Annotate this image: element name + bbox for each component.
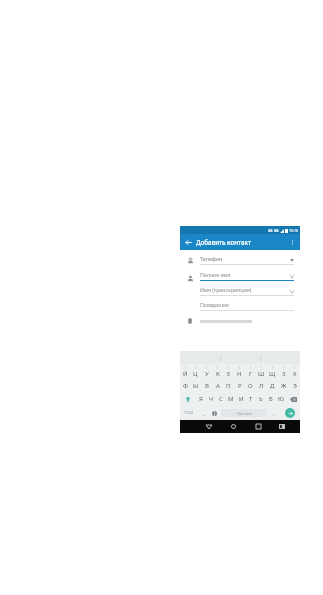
staticText: Ц — [193, 370, 198, 378]
staticText: ?123 — [184, 410, 194, 416]
button[interactable]: 1 — [234, 364, 245, 379]
staticText: Телефон — [200, 255, 290, 262]
button[interactable]: В — [201, 379, 212, 392]
staticText: Т — [249, 395, 253, 403]
staticText: 1 — [228, 366, 230, 370]
staticText: И — [239, 395, 244, 403]
button[interactable]: 1 — [245, 364, 256, 379]
button[interactable]: Hide keyboard — [271, 420, 293, 433]
staticText: Я — [199, 395, 203, 403]
staticText: В — [205, 382, 209, 390]
staticText: А — [216, 382, 220, 390]
staticText: Г — [249, 370, 253, 378]
button[interactable]: Псевдоним — [200, 301, 294, 311]
staticText: . — [273, 410, 275, 417]
staticText: Э — [293, 382, 297, 390]
button[interactable]: Б — [266, 392, 276, 406]
staticText: 1 — [206, 366, 208, 370]
button[interactable]: 1 — [180, 364, 190, 379]
staticText: У — [205, 370, 209, 378]
button[interactable]: А — [212, 379, 223, 392]
staticText: 3G — [268, 228, 273, 233]
button[interactable]: П — [223, 379, 234, 392]
staticText: Полное имя — [200, 271, 290, 278]
button[interactable]: 1 — [190, 364, 201, 379]
staticText: М — [228, 395, 234, 403]
staticText: , — [203, 410, 205, 417]
button[interactable]: . — [268, 406, 279, 420]
staticText: Ф — [183, 382, 188, 390]
staticText: Ч — [209, 395, 214, 403]
button[interactable]: Имя (транскрипция) — [200, 286, 294, 296]
staticText: К — [216, 370, 220, 378]
staticText: Д — [270, 382, 275, 390]
button[interactable]: 1 — [212, 364, 223, 379]
staticText: Ж — [281, 382, 287, 390]
staticText: 1 — [195, 366, 197, 370]
staticText: Ю — [278, 395, 284, 403]
button[interactable]: Ы — [190, 379, 201, 392]
button[interactable]: Ю — [276, 392, 286, 406]
button[interactable]: Back — [180, 234, 196, 250]
button[interactable]: Back — [196, 420, 221, 433]
staticText: Ь — [259, 395, 263, 403]
staticText: Л — [259, 382, 264, 390]
button[interactable]: ?123 — [180, 406, 198, 420]
staticText: 19:16 — [289, 228, 298, 233]
button[interactable]: , — [198, 406, 209, 420]
staticText: Ш — [258, 370, 265, 378]
button[interactable]: Switch language — [209, 406, 220, 420]
staticText: Ы — [193, 382, 199, 390]
button[interactable]: О — [245, 379, 256, 392]
button[interactable]: С — [216, 392, 226, 406]
button[interactable]: Shift — [180, 392, 195, 406]
staticText: 1 — [283, 366, 285, 370]
staticText: Щ — [269, 370, 276, 378]
button[interactable]: М — [226, 392, 236, 406]
button[interactable]: Э — [289, 379, 300, 392]
button[interactable]: Enter — [279, 406, 300, 420]
button[interactable]: Ь — [256, 392, 266, 406]
staticText: З — [282, 370, 286, 378]
staticText: 1 — [294, 366, 296, 370]
staticText: 1 — [261, 366, 263, 370]
button[interactable]: Полное имя — [200, 271, 294, 281]
button[interactable]: Д — [267, 379, 278, 392]
staticText: Х — [293, 370, 297, 378]
button[interactable]: Recent apps — [246, 420, 271, 433]
button[interactable]: Т — [246, 392, 256, 406]
staticText: 1 — [185, 366, 187, 370]
button[interactable]: Телефон — [180, 252, 300, 268]
staticText: 4G — [274, 228, 279, 233]
button[interactable]: 1 — [278, 364, 289, 379]
button[interactable]: Я — [195, 392, 206, 406]
button[interactable]: Backspace — [286, 392, 300, 406]
staticText: Е — [227, 370, 231, 378]
button[interactable]: Ф — [180, 379, 190, 392]
staticText: О — [248, 382, 253, 390]
staticText: Псевдоним — [200, 301, 294, 308]
button[interactable]: Русский — [221, 409, 267, 417]
button[interactable]: Ж — [278, 379, 289, 392]
button[interactable]: 1 — [256, 364, 267, 379]
staticText: Н — [237, 370, 242, 378]
button[interactable]: Ч — [206, 392, 216, 406]
button[interactable]: 1 — [223, 364, 234, 379]
staticText: Имя (транскрипция) — [200, 286, 290, 293]
button[interactable]: 1 — [267, 364, 278, 379]
staticText: 1 — [239, 366, 241, 370]
staticText: 1 — [250, 366, 252, 370]
button[interactable]: 1 — [289, 364, 300, 379]
button[interactable]: Home — [221, 420, 246, 433]
button[interactable]: Л — [256, 379, 267, 392]
staticText: Б — [269, 395, 273, 403]
button[interactable]: Р — [234, 379, 245, 392]
staticText: 1 — [217, 366, 219, 370]
staticText: Й — [183, 370, 188, 378]
button[interactable]: More options — [284, 234, 300, 250]
button[interactable]: 1 — [201, 364, 212, 379]
button[interactable]: И — [236, 392, 246, 406]
